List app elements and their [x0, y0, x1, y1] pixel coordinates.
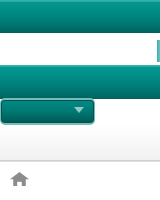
button[interactable]: Action bar — [0, 0, 160, 33]
button[interactable]: Toolbar — [0, 65, 160, 99]
button[interactable]: Home — [5, 167, 33, 191]
button[interactable]: Select option — [0, 98, 95, 125]
